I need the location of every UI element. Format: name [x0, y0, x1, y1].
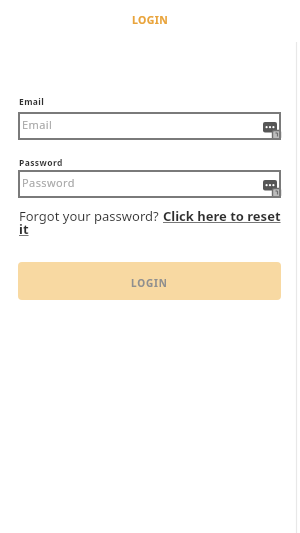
button[interactable]: it — [19, 220, 29, 238]
button[interactable]: LOGIN — [18, 262, 281, 300]
button[interactable]: Click here to reset — [163, 207, 281, 225]
staticText: Forgot your password? — [19, 207, 163, 225]
button[interactable]: Email — [18, 112, 281, 140]
staticText: Password — [22, 175, 75, 190]
staticText: LOGIN — [131, 276, 168, 290]
staticText: LOGIN — [132, 13, 169, 27]
staticText: Email — [22, 117, 53, 132]
button[interactable]: Password — [18, 170, 281, 198]
staticText: Email — [19, 96, 45, 108]
staticText: Password — [19, 157, 63, 169]
